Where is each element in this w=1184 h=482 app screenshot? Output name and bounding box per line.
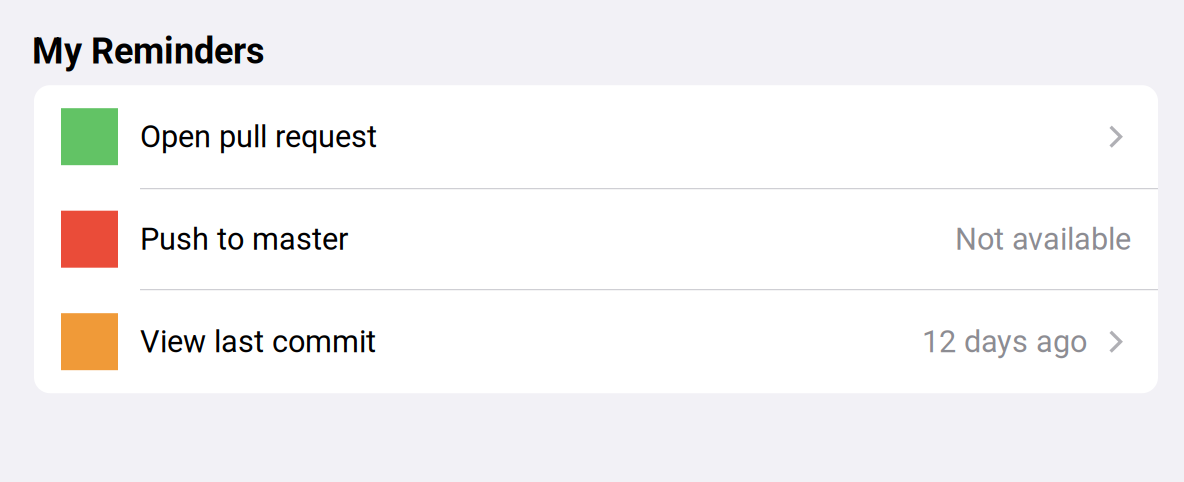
button[interactable]: View last commit — [34, 290, 1158, 393]
staticText: Push to master — [140, 221, 348, 257]
button[interactable]: Push to master — [34, 189, 1158, 289]
staticText: 12 days ago — [922, 324, 1087, 360]
staticText: Open pull request — [140, 119, 377, 155]
button[interactable]: Open pull request — [34, 85, 1158, 188]
staticText: My Reminders — [32, 30, 264, 72]
staticText: Not available — [955, 221, 1131, 257]
staticText: View last commit — [140, 324, 376, 360]
